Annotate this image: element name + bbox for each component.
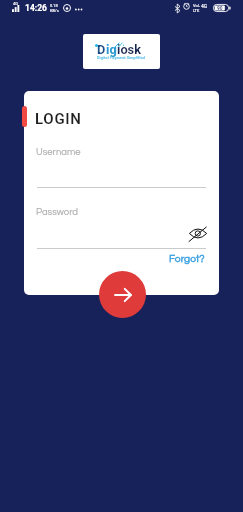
- staticText: Password: [36, 207, 78, 217]
- staticText: KB/s: [50, 8, 59, 13]
- staticText: 14:26: [25, 3, 47, 13]
- staticText: 0.18: [50, 3, 58, 8]
- button[interactable]: Sign in: [99, 271, 146, 318]
- staticText: VoL: [193, 3, 200, 8]
- staticText: Username: [36, 147, 81, 157]
- staticText: 90: [217, 6, 223, 12]
- staticText: D: [97, 42, 106, 57]
- button[interactable]: Show password: [188, 223, 208, 243]
- staticText: Forgot?: [169, 254, 205, 265]
- staticText: 4G: [201, 3, 208, 9]
- staticText: Digital Payment Simplified: [97, 56, 146, 60]
- staticText: iosk: [117, 42, 142, 57]
- staticText: ig: [106, 42, 117, 57]
- button[interactable]: Forgot?: [166, 251, 208, 268]
- staticText: LOGIN: [35, 110, 82, 128]
- staticText: 4G: [13, 1, 18, 6]
- staticText: LTE: [193, 8, 200, 13]
